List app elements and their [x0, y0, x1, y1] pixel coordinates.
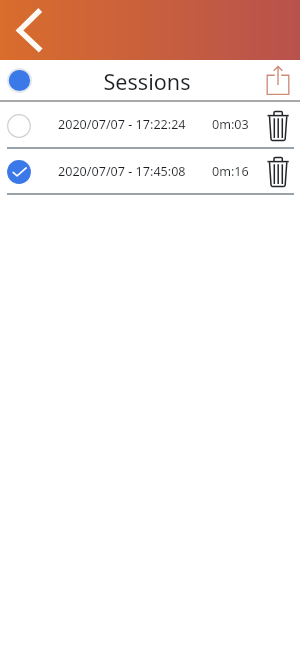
button[interactable]: Delete	[256, 149, 300, 193]
staticText: 2020/07/07 - 17:22:24	[58, 116, 186, 133]
button[interactable]: Share	[256, 60, 300, 100]
button[interactable]: Delete	[256, 102, 300, 147]
staticText: 2020/07/07 - 17:45:08	[58, 163, 186, 180]
staticText: 0m:16	[212, 163, 249, 180]
button[interactable]: Back	[0, 0, 56, 60]
button[interactable]: 2020/07/07 - 17:45:08	[0, 149, 300, 193]
button[interactable]: Select all	[0, 60, 38, 100]
staticText: 0m:03	[212, 116, 249, 133]
button[interactable]: 2020/07/07 - 17:22:24	[0, 102, 300, 147]
staticText: Sessions	[38, 67, 256, 96]
